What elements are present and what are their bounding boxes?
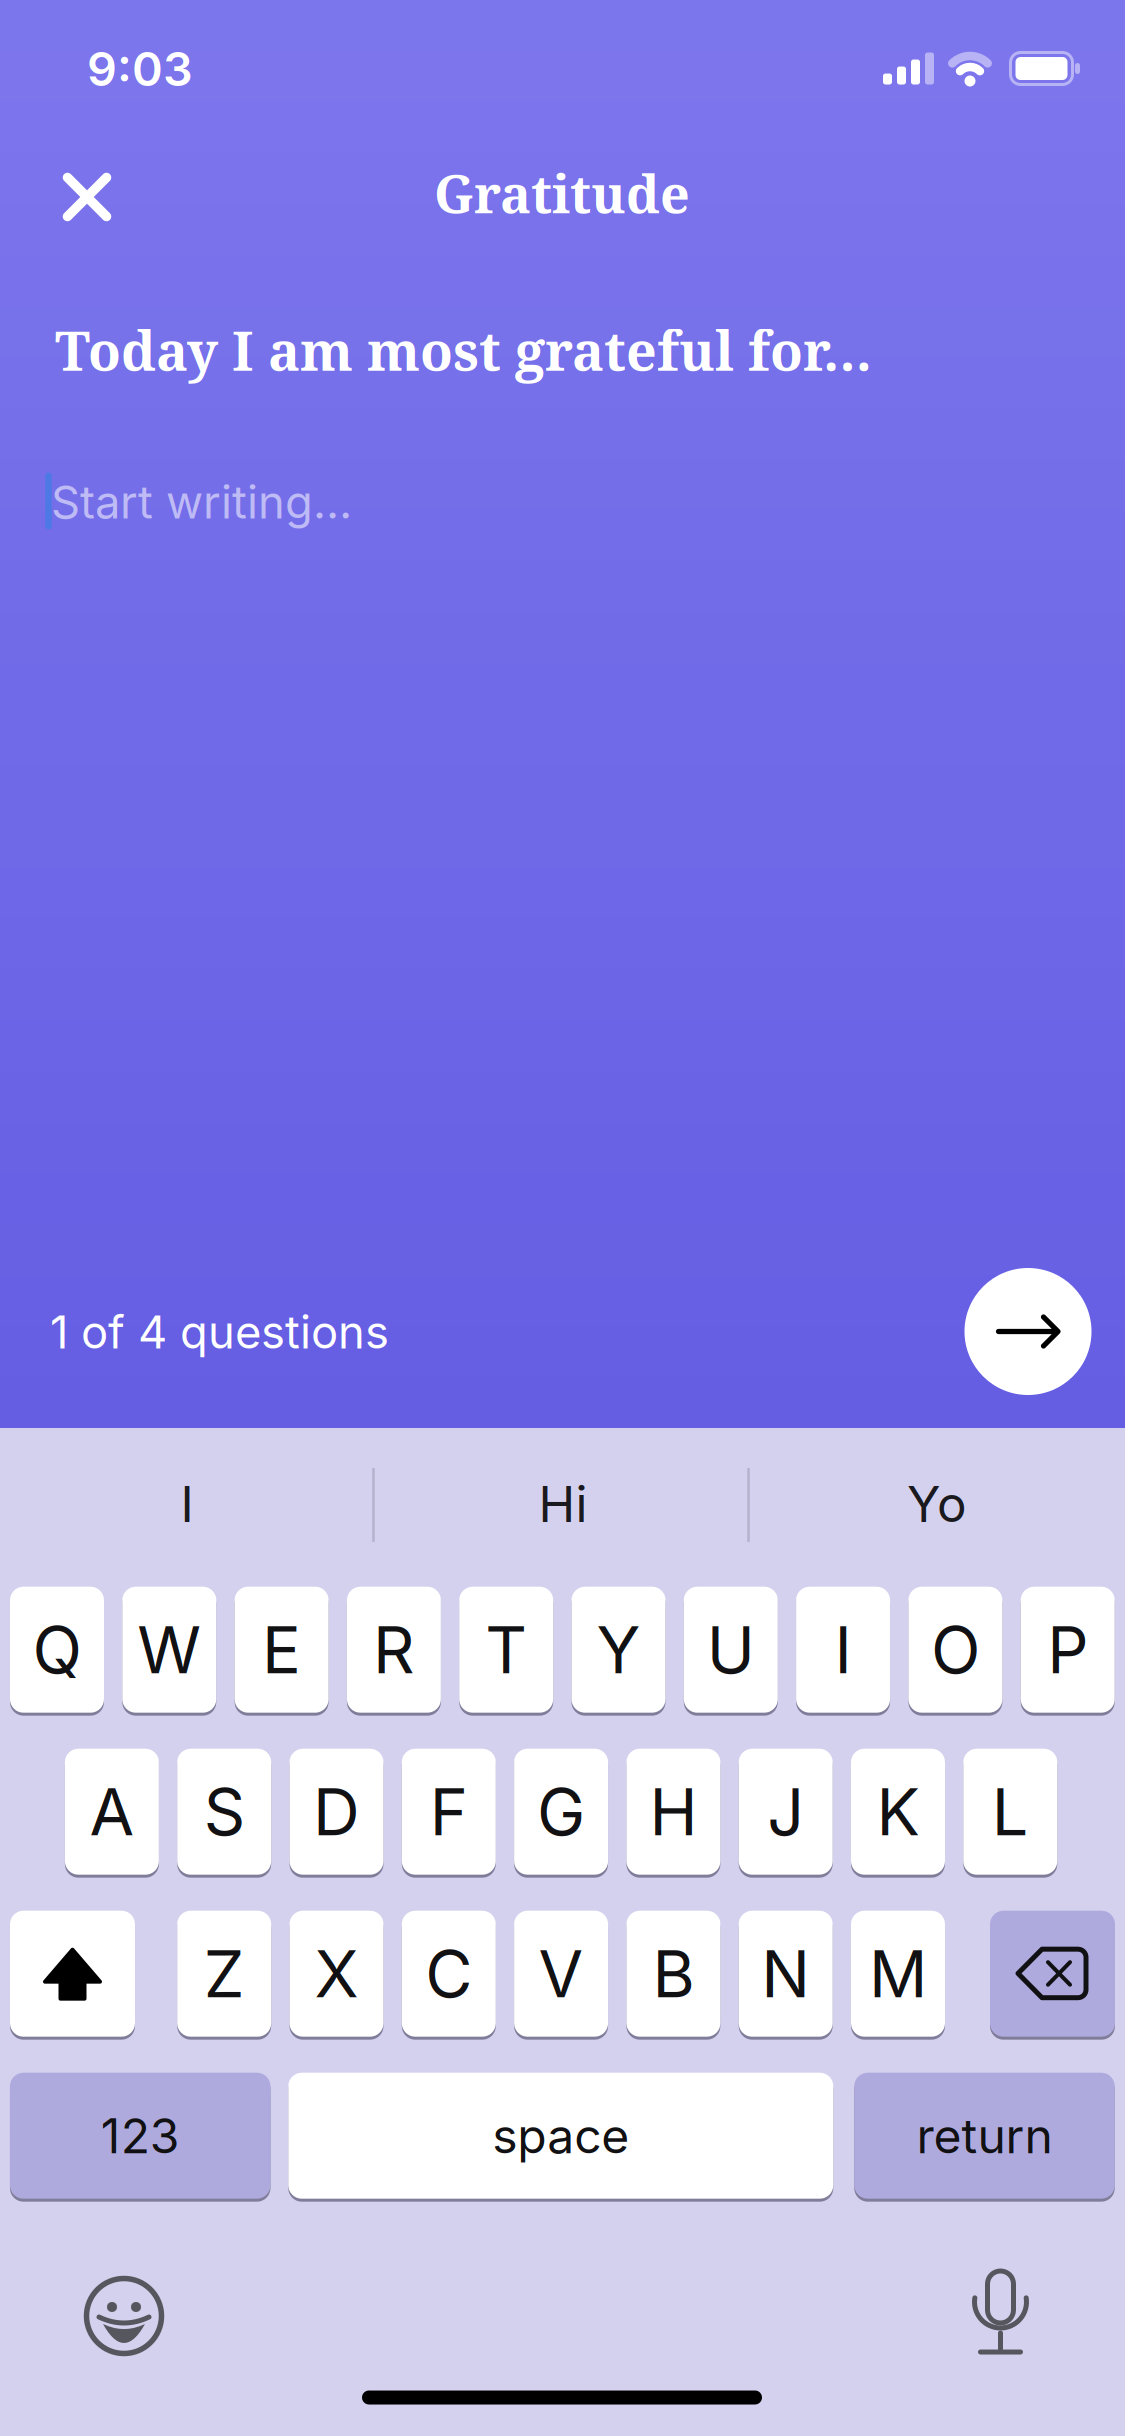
staticText: C	[425, 1935, 472, 2013]
staticText: T	[485, 1611, 527, 1689]
staticText: X	[314, 1935, 358, 2013]
button[interactable]: H	[626, 1749, 720, 1875]
staticText: L	[992, 1773, 1029, 1851]
button[interactable]: M	[851, 1911, 945, 2037]
staticText: Y	[596, 1611, 640, 1689]
staticText: P	[1047, 1611, 1088, 1689]
button[interactable]: N	[739, 1911, 833, 2037]
staticText: 9:03	[87, 41, 193, 97]
staticText: R	[373, 1611, 415, 1689]
button[interactable]: K	[851, 1749, 945, 1875]
staticText: S	[204, 1773, 245, 1851]
staticText: A	[89, 1773, 134, 1851]
button[interactable]: 123	[10, 2073, 270, 2199]
staticText: Hi	[538, 1474, 587, 1534]
staticText: Z	[204, 1935, 245, 2013]
staticText: Gratitude	[434, 158, 690, 228]
button[interactable]: V	[514, 1911, 608, 2037]
button[interactable]: I	[17, 1445, 357, 1563]
staticText: F	[430, 1773, 468, 1851]
button[interactable]: Yo	[767, 1445, 1107, 1563]
button[interactable]: L	[963, 1749, 1057, 1875]
staticText: N	[761, 1935, 810, 2013]
button[interactable]: space	[288, 2073, 833, 2199]
button[interactable]: S	[177, 1749, 271, 1875]
button[interactable]: C	[402, 1911, 496, 2037]
staticText: D	[313, 1773, 360, 1851]
staticText: I	[835, 1611, 852, 1689]
button[interactable]: U	[684, 1587, 778, 1713]
button[interactable]: Y	[571, 1587, 665, 1713]
staticText: E	[262, 1611, 301, 1689]
staticText: I	[180, 1474, 193, 1534]
button[interactable]: F	[402, 1749, 496, 1875]
button[interactable]: D	[289, 1749, 383, 1875]
staticText: return	[916, 2107, 1052, 2165]
staticText: Yo	[907, 1474, 967, 1534]
button[interactable]: Next question	[964, 1268, 1091, 1395]
button[interactable]: Hi	[393, 1445, 733, 1563]
button[interactable]: W	[122, 1587, 216, 1713]
staticText: W	[137, 1611, 201, 1689]
button[interactable]: Dictation	[961, 2263, 1039, 2363]
button[interactable]: A	[65, 1749, 159, 1875]
staticText: O	[931, 1611, 980, 1689]
button[interactable]: R	[347, 1587, 441, 1713]
button[interactable]: P	[1021, 1587, 1115, 1713]
button[interactable]: return	[854, 2073, 1115, 2199]
staticText: J	[767, 1773, 804, 1851]
staticText: H	[649, 1773, 697, 1851]
button[interactable]: B	[626, 1911, 720, 2037]
staticText: Q	[32, 1611, 81, 1689]
staticText: 1 of 4 questions	[50, 1305, 389, 1359]
button[interactable]: Shift	[10, 1911, 135, 2037]
button[interactable]: Q	[10, 1587, 104, 1713]
button[interactable]: E	[235, 1587, 329, 1713]
staticText: M	[869, 1935, 927, 2013]
button[interactable]: Delete	[990, 1911, 1115, 2037]
staticText: V	[539, 1935, 584, 2013]
staticText: space	[492, 2107, 629, 2165]
staticText: Start writing…	[51, 475, 352, 529]
button[interactable]: Z	[177, 1911, 271, 2037]
staticText: K	[876, 1773, 919, 1851]
button[interactable]: O	[908, 1587, 1002, 1713]
button[interactable]: G	[514, 1749, 608, 1875]
button[interactable]: J	[739, 1749, 833, 1875]
staticText: G	[537, 1773, 585, 1851]
button[interactable]: Emoji	[76, 2268, 172, 2364]
button[interactable]: I	[796, 1587, 890, 1713]
staticText: B	[652, 1935, 694, 2013]
button[interactable]: T	[459, 1587, 553, 1713]
button[interactable]: X	[289, 1911, 383, 2037]
button[interactable]: Close	[47, 157, 126, 236]
staticText: Today I am most grateful for…	[55, 313, 872, 387]
staticText: 123	[101, 2107, 180, 2165]
staticText: U	[707, 1611, 755, 1689]
